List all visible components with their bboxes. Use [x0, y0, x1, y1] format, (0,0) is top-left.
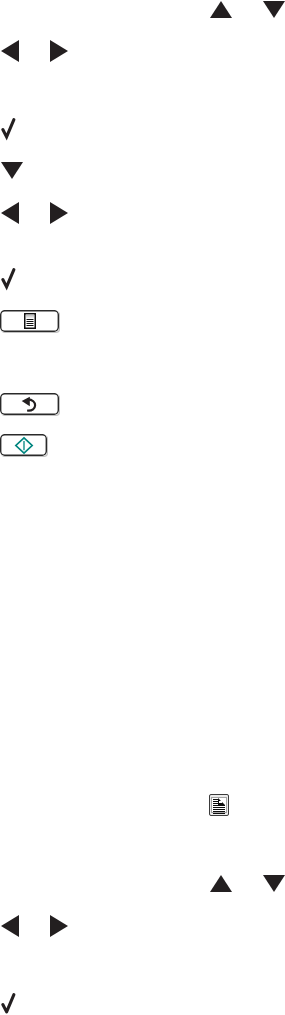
button[interactable]: Left [1, 40, 19, 62]
button[interactable]: Down [1, 162, 23, 179]
button[interactable]: Select [1, 118, 15, 139]
button[interactable]: Back [0, 393, 59, 415]
button[interactable]: Right [50, 915, 68, 937]
button[interactable]: Select [1, 993, 15, 1014]
button[interactable]: Select [1, 268, 15, 289]
button[interactable]: Down [263, 1, 285, 18]
button[interactable]: Left [1, 915, 19, 937]
button[interactable]: Right [50, 202, 68, 224]
button[interactable]: Start [0, 434, 47, 456]
button[interactable]: Up [210, 875, 232, 892]
button[interactable]: Down [263, 875, 285, 892]
button[interactable]: Menu [0, 310, 59, 332]
button[interactable]: Up [210, 1, 232, 18]
button[interactable]: Right [50, 40, 68, 62]
button[interactable]: Left [1, 202, 19, 224]
